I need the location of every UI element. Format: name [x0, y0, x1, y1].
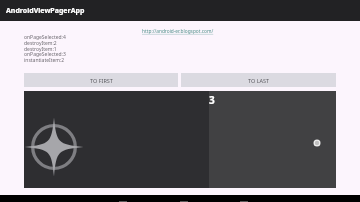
- staticText: destroyItem:1: [24, 46, 57, 53]
- button[interactable]: Page 3: [209, 91, 336, 188]
- staticText: instantiateItem:2: [24, 57, 65, 64]
- staticText: TO LAST: [248, 77, 270, 84]
- staticText: http://android-er.blogspot.com/: [142, 28, 214, 35]
- staticText: destroyItem:2: [24, 40, 57, 47]
- staticText: TO FIRST: [90, 77, 113, 84]
- staticText: onPageSelected:3: [24, 51, 66, 58]
- staticText: 3: [209, 93, 215, 107]
- button[interactable]: http://android-er.blogspot.com/: [142, 28, 214, 35]
- button[interactable]: TO FIRST: [24, 73, 178, 87]
- button[interactable]: TO LAST: [181, 73, 336, 87]
- button[interactable]: Back: [115, 195, 131, 202]
- staticText: onPageSelected:4: [24, 34, 66, 41]
- button[interactable]: Home: [176, 195, 192, 202]
- staticText: AndroidViewPagerApp: [6, 6, 85, 16]
- button[interactable]: Page 2: [24, 91, 209, 188]
- button[interactable]: Recent apps: [236, 195, 252, 202]
